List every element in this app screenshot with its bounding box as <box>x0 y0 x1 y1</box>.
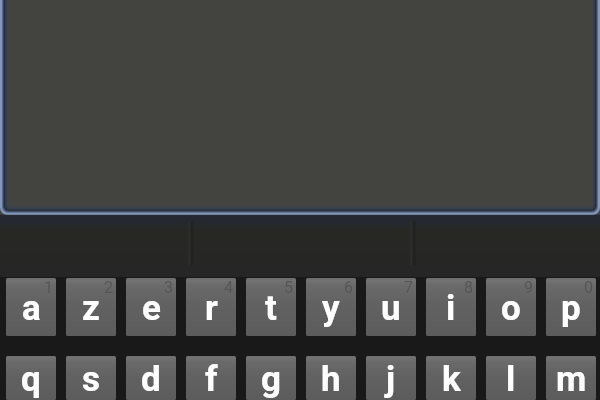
staticText: m <box>556 359 587 400</box>
staticText: d <box>141 359 161 400</box>
staticText: y <box>322 288 340 329</box>
button[interactable]: y <box>306 278 356 336</box>
staticText: p <box>561 288 581 329</box>
staticText: 4 <box>224 278 233 297</box>
staticText: r <box>205 288 218 329</box>
button[interactable]: m <box>546 356 596 400</box>
button[interactable]: e <box>126 278 176 336</box>
staticText: l <box>506 359 516 400</box>
button[interactable] <box>0 216 200 277</box>
staticText: a <box>22 288 41 329</box>
staticText: 6 <box>344 278 353 297</box>
button[interactable]: i <box>426 278 476 336</box>
staticText: f <box>205 359 218 400</box>
button[interactable]: k <box>426 356 476 400</box>
button[interactable]: u <box>366 278 416 336</box>
staticText: 5 <box>284 278 293 297</box>
staticText: h <box>321 359 341 400</box>
staticText: e <box>142 288 161 329</box>
staticText: 2 <box>104 278 113 297</box>
staticText: 7 <box>404 278 413 297</box>
staticText: 8 <box>464 278 473 297</box>
button[interactable]: q <box>6 356 56 400</box>
button[interactable] <box>200 216 400 277</box>
button[interactable]: h <box>306 356 356 400</box>
button[interactable]: a <box>6 278 56 336</box>
button[interactable]: d <box>126 356 176 400</box>
button[interactable]: g <box>246 356 296 400</box>
staticText: o <box>501 288 521 329</box>
staticText: k <box>442 359 461 400</box>
staticText: q <box>21 359 41 400</box>
staticText: i <box>446 288 456 329</box>
button[interactable] <box>400 216 600 277</box>
button[interactable]: r <box>186 278 236 336</box>
button[interactable]: j <box>366 356 416 400</box>
button[interactable]: z <box>66 278 116 336</box>
staticText: t <box>265 288 277 329</box>
staticText: 1 <box>44 278 53 297</box>
button[interactable]: l <box>486 356 536 400</box>
staticText: g <box>261 359 281 400</box>
button[interactable]: t <box>246 278 296 336</box>
staticText: 3 <box>164 278 173 297</box>
staticText: j <box>386 359 396 400</box>
staticText: s <box>82 359 100 400</box>
staticText: z <box>82 288 100 329</box>
button[interactable]: s <box>66 356 116 400</box>
staticText: 0 <box>584 278 593 297</box>
button[interactable]: p <box>546 278 596 336</box>
staticText: 9 <box>524 278 533 297</box>
button[interactable]: o <box>486 278 536 336</box>
staticText: u <box>381 288 401 329</box>
button[interactable]: f <box>186 356 236 400</box>
